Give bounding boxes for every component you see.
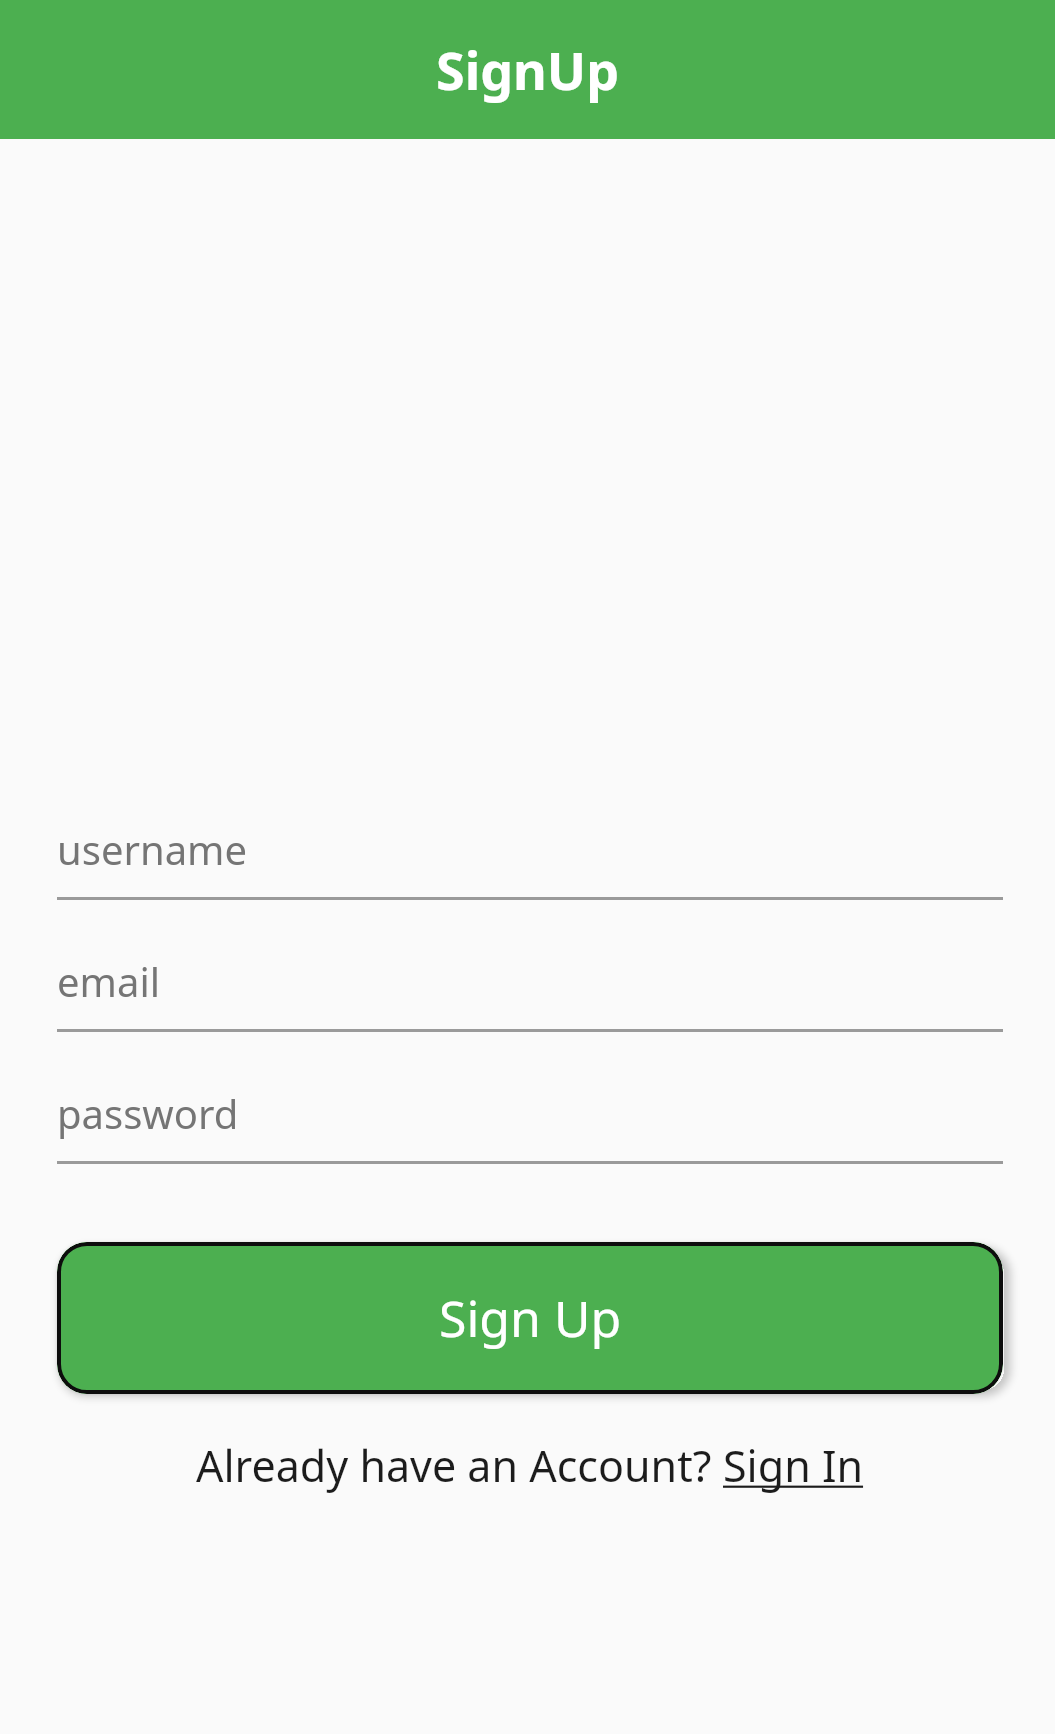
staticText: Sign Up <box>439 1284 622 1352</box>
staticText: SignUp <box>436 34 620 105</box>
staticText: username <box>57 822 248 876</box>
button[interactable]: Sign Up <box>57 1242 1003 1394</box>
staticText: password <box>57 1086 239 1140</box>
button[interactable]: username <box>57 800 1003 900</box>
button[interactable]: Sign In <box>723 1436 864 1495</box>
staticText: Sign In <box>723 1436 864 1495</box>
button[interactable]: email <box>57 932 1003 1032</box>
staticText: Already have an Account? <box>196 1436 723 1495</box>
staticText: email <box>57 954 161 1008</box>
button[interactable]: password <box>57 1064 1003 1164</box>
